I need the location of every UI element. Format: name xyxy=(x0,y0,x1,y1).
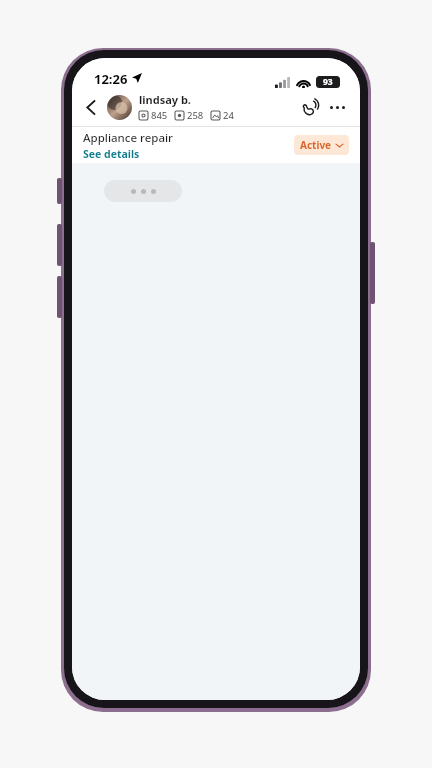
staticText: Appliance repair xyxy=(83,130,173,146)
staticText: See details xyxy=(83,147,140,161)
staticText: 93 xyxy=(323,76,333,88)
button[interactable]: More options xyxy=(324,94,350,120)
staticText: 258 xyxy=(187,109,204,122)
staticText: lindsay b. xyxy=(139,92,191,107)
button[interactable]: Active xyxy=(294,135,349,155)
staticText: 24 xyxy=(223,109,234,122)
button[interactable]: Profile photo xyxy=(107,95,132,120)
button[interactable]: Appliance repair xyxy=(83,127,349,163)
staticText: 12:26 xyxy=(94,70,128,88)
staticText: 845 xyxy=(151,109,168,122)
button[interactable]: Call xyxy=(296,93,324,121)
staticText: Active xyxy=(300,138,332,152)
button[interactable]: Back xyxy=(78,94,104,120)
